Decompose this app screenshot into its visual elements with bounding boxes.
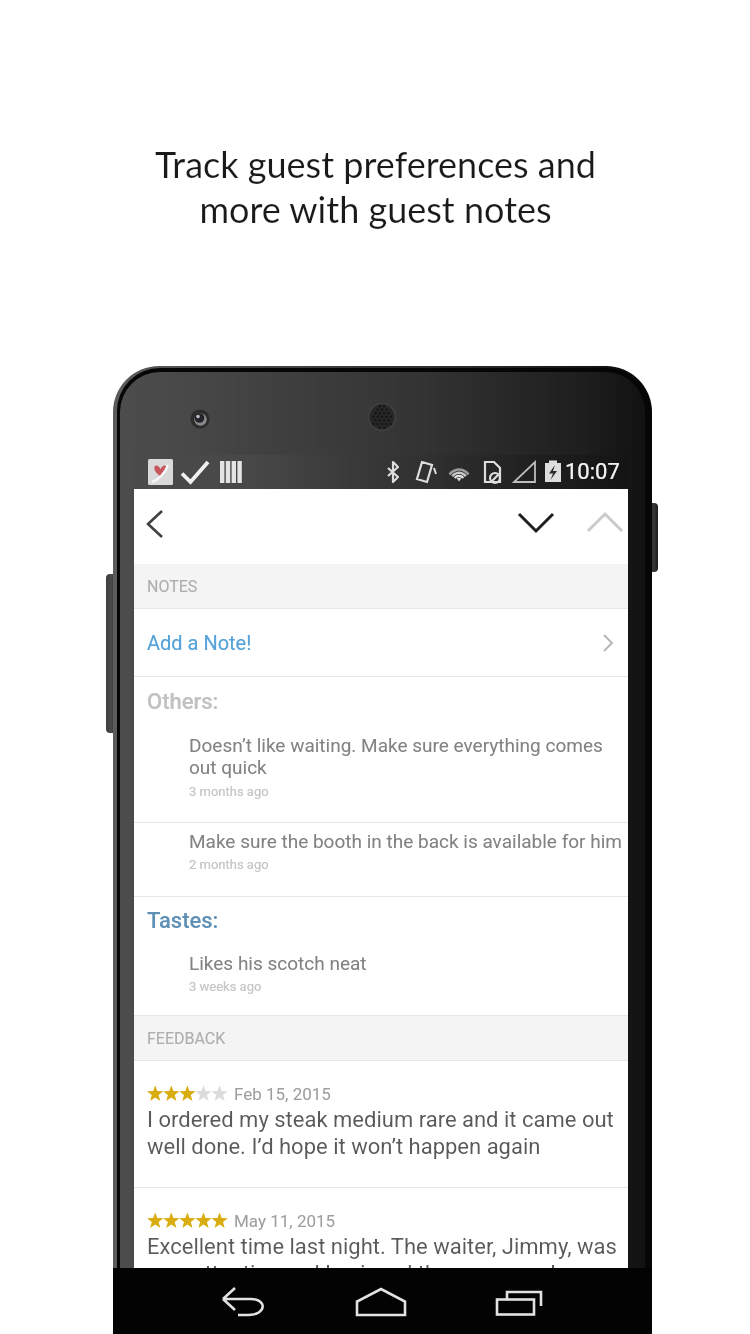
staticText: 2 months ago	[189, 857, 269, 872]
staticText: Add a Note!	[147, 631, 252, 654]
button[interactable]: Feb 15, 2015	[134, 1061, 628, 1187]
staticText: Excellent time last night. The waiter, J…	[147, 1234, 626, 1268]
button[interactable]: Next guest	[508, 495, 564, 551]
staticText: 10:07	[565, 459, 620, 485]
staticText: Tastes:	[147, 908, 219, 934]
button[interactable]: Home	[350, 1271, 412, 1333]
staticText: Make sure the booth in the back is avail…	[189, 830, 623, 852]
staticText: Feb 15, 2015	[234, 1084, 331, 1104]
button[interactable]: Add a Note!	[134, 609, 628, 676]
staticText: 3 months ago	[189, 784, 269, 799]
staticText: Others:	[147, 689, 219, 715]
staticText: NOTES	[147, 577, 198, 596]
staticText: May 11, 2015	[234, 1211, 336, 1231]
button[interactable]: Doesn’t like waiting. Make sure everythi…	[134, 727, 628, 822]
button[interactable]: Recents	[488, 1272, 550, 1334]
button[interactable]: May 11, 2015	[134, 1188, 628, 1268]
staticText: FEEDBACK	[147, 1029, 226, 1048]
staticText: more with guest notes	[199, 187, 552, 230]
staticText: 3 weeks ago	[189, 979, 262, 994]
staticText: I ordered my steak medium rare and it ca…	[147, 1107, 626, 1159]
staticText: Track guest preferences and	[155, 142, 596, 185]
button[interactable]: Back	[213, 1272, 275, 1334]
staticText: Doesn’t like waiting. Make sure everythi…	[189, 734, 626, 779]
button[interactable]: Previous guest	[577, 495, 628, 551]
button[interactable]: Back	[134, 496, 183, 552]
button[interactable]: Make sure the booth in the back is avail…	[134, 823, 628, 896]
staticText: Likes his scotch neat	[189, 952, 367, 974]
button[interactable]: Likes his scotch neat	[134, 945, 628, 1015]
